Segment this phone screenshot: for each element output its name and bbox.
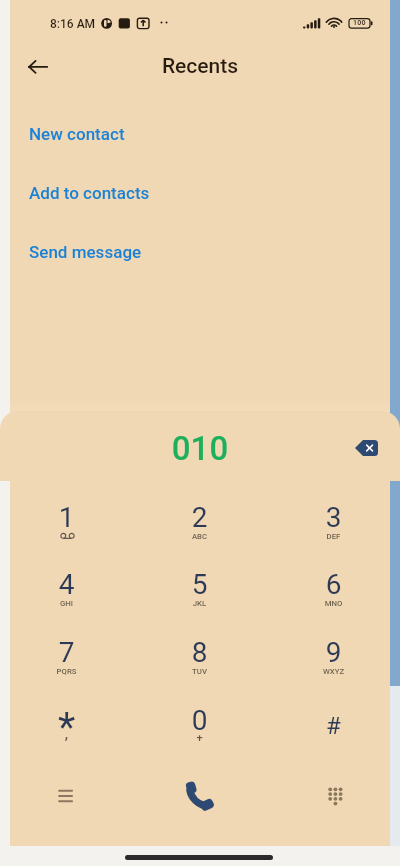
button[interactable]: 1	[0, 483, 133, 551]
staticText: TUV	[133, 667, 266, 677]
staticText: 4	[0, 568, 133, 603]
staticText: JKL	[133, 599, 266, 609]
button[interactable]: 6	[267, 550, 400, 618]
button[interactable]: 2	[133, 483, 266, 551]
staticText: ,	[0, 725, 133, 744]
staticText: Recents	[0, 54, 400, 88]
button[interactable]: Back	[13, 43, 61, 91]
staticText: 010	[0, 429, 400, 482]
button[interactable]: 4	[0, 550, 133, 618]
button[interactable]: Call log	[0, 768, 133, 824]
button[interactable]: Add to contacts	[10, 173, 390, 213]
staticText: 0	[133, 704, 266, 739]
button[interactable]: New contact	[10, 114, 390, 154]
button[interactable]: Send message	[10, 232, 390, 272]
button[interactable]: Backspace	[345, 427, 387, 469]
button[interactable]: Call	[133, 768, 266, 824]
staticText: ABC	[133, 532, 266, 542]
staticText: *	[0, 704, 133, 754]
staticText: +	[133, 732, 266, 746]
staticText: 100	[353, 19, 366, 27]
staticText: 9	[267, 636, 400, 671]
staticText: PQRS	[0, 667, 133, 677]
button[interactable]: 5	[133, 550, 266, 618]
staticText: 7	[0, 636, 133, 671]
button[interactable]: Keypad	[267, 768, 400, 824]
staticText: DEF	[267, 532, 400, 542]
staticText: 6	[267, 568, 400, 603]
button[interactable]: 3	[267, 483, 400, 551]
button[interactable]: *	[0, 686, 133, 754]
button[interactable]: 8	[133, 618, 266, 686]
staticText: Send message	[29, 242, 142, 262]
staticText: 5	[133, 568, 266, 603]
staticText: 3	[267, 501, 400, 536]
staticText: Add to contacts	[29, 183, 150, 203]
button[interactable]: #	[267, 686, 400, 754]
staticText: WXYZ	[267, 667, 400, 677]
staticText: GHI	[0, 599, 133, 609]
staticText: #	[267, 712, 400, 742]
staticText: 1	[0, 501, 133, 536]
button[interactable]: 7	[0, 618, 133, 686]
button[interactable]: 0	[133, 686, 266, 754]
staticText: MNO	[267, 599, 400, 609]
staticText: 2	[133, 501, 266, 536]
staticText: New contact	[29, 124, 125, 144]
button[interactable]: 9	[267, 618, 400, 686]
staticText: 8	[133, 636, 266, 671]
staticText: 8:16 AM	[50, 17, 96, 31]
